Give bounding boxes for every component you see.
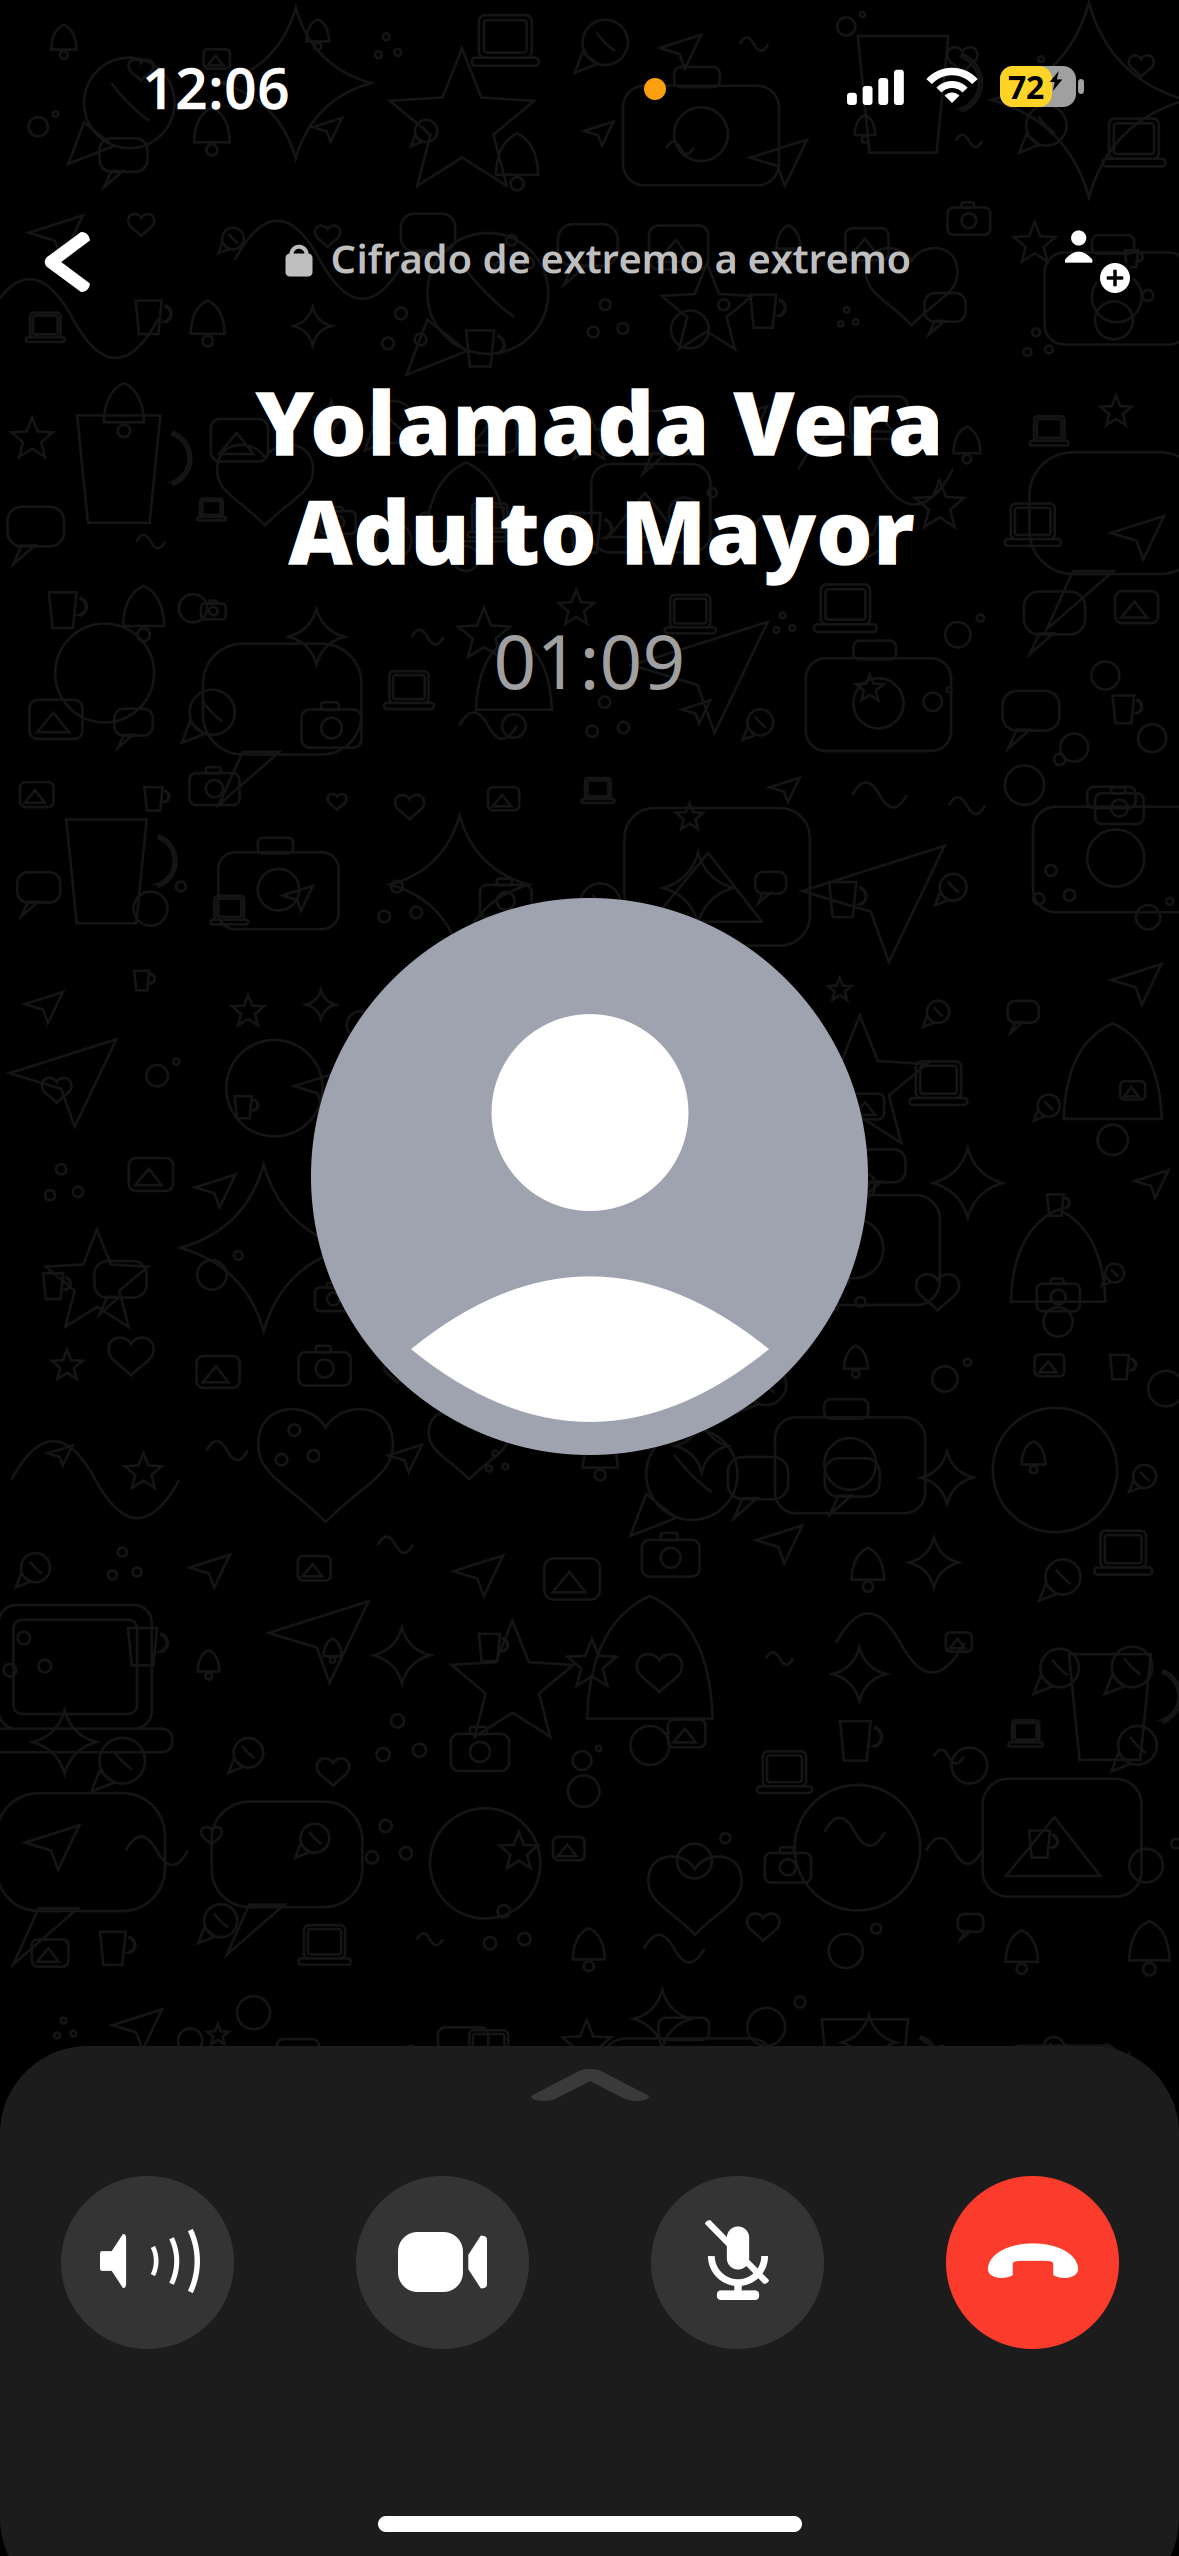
button[interactable]: Altavoz [61,2176,234,2349]
button[interactable]: Atrás [10,197,140,327]
button[interactable]: Finalizar llamada [946,2176,1119,2349]
staticText: Cifrado de extremo a extremo [330,231,911,284]
staticText: 72 [1008,65,1044,108]
staticText: 12:06 [142,49,290,125]
button[interactable]: Silenciar micrófono [651,2176,824,2349]
staticText: Yolamada Vera [255,362,944,480]
staticText: Adulto Mayor [288,471,915,589]
button[interactable]: Añadir participante [1034,194,1164,324]
staticText: 01:09 [493,610,685,710]
button[interactable]: Vídeo [356,2176,529,2349]
